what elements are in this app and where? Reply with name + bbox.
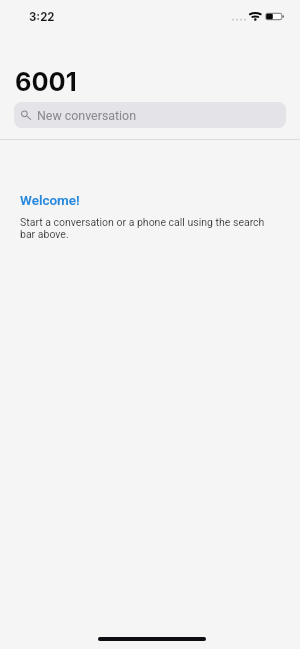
other: Cellular signal (231, 15, 247, 24)
other: Wi-Fi (247, 11, 263, 22)
other: Search (20, 108, 32, 121)
staticText: 6001 (15, 66, 77, 97)
other: Battery (264, 11, 285, 22)
staticText: 3:22 (29, 10, 55, 24)
staticText: New conversation (37, 108, 136, 123)
staticText: Start a conversation or a phone call usi… (20, 217, 275, 241)
staticText: Welcome! (20, 192, 80, 208)
button[interactable]: Search (14, 102, 286, 128)
